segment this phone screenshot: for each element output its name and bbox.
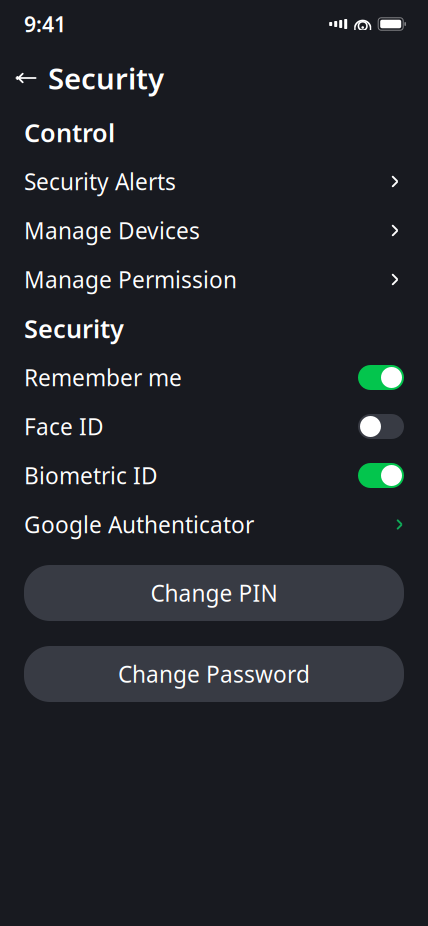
staticText: Control — [24, 116, 115, 149]
staticText: Security — [48, 58, 164, 97]
button[interactable]: Back — [4, 56, 48, 100]
staticText: Change Password — [118, 659, 310, 689]
button[interactable]: Manage Permission — [0, 255, 428, 304]
button[interactable]: Manage Devices — [0, 206, 428, 255]
staticText: Remember me — [24, 362, 182, 392]
staticText: Face ID — [24, 411, 104, 441]
staticText: Manage Permission — [24, 264, 237, 294]
staticText: Biometric ID — [24, 460, 158, 490]
staticText: Google Authenticator — [24, 509, 254, 539]
staticText: Manage Devices — [24, 215, 200, 245]
button[interactable]: Security Alerts — [0, 157, 428, 206]
button[interactable]: Biometric ID — [358, 463, 404, 488]
staticText: Security — [24, 312, 124, 345]
staticText: Change PIN — [150, 578, 277, 608]
button[interactable]: Change Password — [24, 646, 404, 702]
staticText: Security Alerts — [24, 166, 176, 196]
button[interactable]: Remember me — [358, 365, 404, 390]
button[interactable]: Face ID — [358, 414, 404, 439]
staticText: 9:41 — [24, 10, 66, 38]
button[interactable]: Change PIN — [24, 565, 404, 621]
button[interactable]: Google Authenticator — [0, 500, 428, 549]
